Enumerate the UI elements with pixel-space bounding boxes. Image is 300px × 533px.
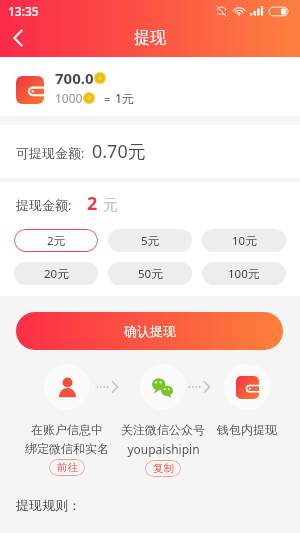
staticText: 元 <box>103 196 118 215</box>
button[interactable]: 复制 <box>145 460 181 477</box>
staticText: 5元 <box>141 233 160 249</box>
staticText: = <box>104 91 111 106</box>
button[interactable]: 确认提现 <box>16 312 283 350</box>
button[interactable]: 50元 <box>108 262 192 285</box>
staticText: 提现规则： <box>16 497 81 513</box>
staticText: 0.70元 <box>92 139 146 164</box>
button[interactable]: 10元 <box>202 229 286 252</box>
button[interactable]: 5元 <box>108 229 192 252</box>
staticText: 700.0 <box>55 68 94 88</box>
staticText: 提现 <box>134 28 166 48</box>
staticText: 2元 <box>47 233 66 249</box>
button[interactable]: 2元 <box>14 229 98 252</box>
staticText: 提现金额: <box>16 196 72 214</box>
staticText: 50元 <box>138 266 163 282</box>
button[interactable]: 前往 <box>49 459 85 476</box>
staticText: 1元 <box>115 90 134 106</box>
staticText: 钱包内提现 <box>217 422 277 437</box>
staticText: 前往 <box>57 461 78 474</box>
staticText: youpaishipin <box>127 441 200 457</box>
staticText: 20元 <box>44 266 69 282</box>
staticText: 100元 <box>228 266 260 282</box>
staticText: 13:35 <box>8 3 39 19</box>
staticText: 1000 <box>55 90 83 106</box>
staticText: 在账户信息中 <box>31 422 103 437</box>
staticText: 复制 <box>153 462 174 475</box>
button[interactable]: 100元 <box>202 262 286 285</box>
staticText: 10元 <box>232 233 257 249</box>
staticText: 绑定微信和实名 <box>25 441 109 456</box>
staticText: 2 <box>87 191 98 216</box>
button[interactable]: Back <box>0 20 36 56</box>
staticText: 可提现金额: <box>16 144 85 162</box>
button[interactable]: 20元 <box>14 262 98 285</box>
staticText: 确认提现 <box>124 323 176 339</box>
staticText: 关注微信公众号 <box>121 422 205 437</box>
